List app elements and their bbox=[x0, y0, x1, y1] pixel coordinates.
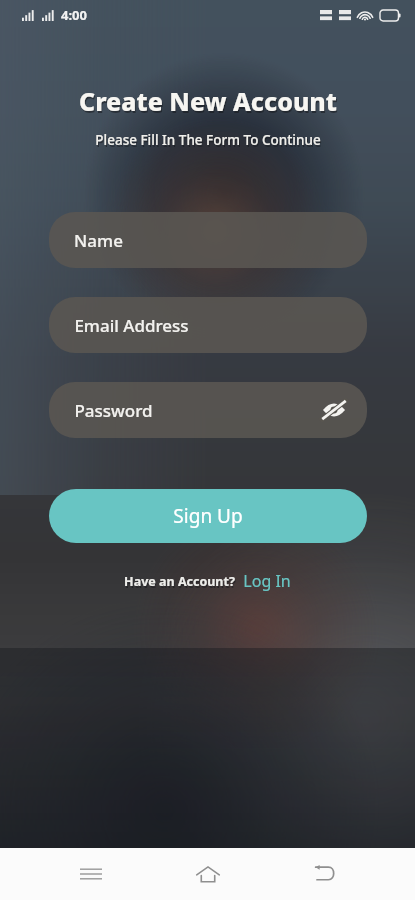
staticText: Create New Account bbox=[79, 84, 337, 118]
staticText: Please Fill In The Form To Continue bbox=[95, 131, 321, 149]
button[interactable]: Recent apps bbox=[65, 848, 117, 900]
staticText: Have an Account? bbox=[125, 575, 236, 592]
button[interactable]: Toggle password visibility bbox=[319, 395, 349, 425]
staticText: Password bbox=[74, 399, 153, 422]
staticText: Have an Account? bbox=[124, 573, 235, 590]
staticText: Name bbox=[74, 229, 123, 252]
staticText: 4:00 bbox=[61, 6, 87, 24]
button[interactable]: Name bbox=[49, 212, 367, 268]
staticText: Sign Up bbox=[173, 503, 243, 529]
button[interactable]: Log In bbox=[243, 570, 291, 592]
staticText: Email Address bbox=[74, 314, 189, 337]
staticText: Log In bbox=[243, 570, 291, 592]
staticText: Create New Account bbox=[80, 86, 338, 120]
button[interactable]: Password bbox=[49, 382, 367, 438]
button[interactable]: Home bbox=[182, 848, 234, 900]
staticText: Please Fill In The Form To Continue bbox=[96, 133, 322, 151]
button[interactable]: Sign Up bbox=[49, 489, 367, 543]
button[interactable]: Back bbox=[298, 848, 350, 900]
button[interactable]: Email Address bbox=[49, 297, 367, 353]
